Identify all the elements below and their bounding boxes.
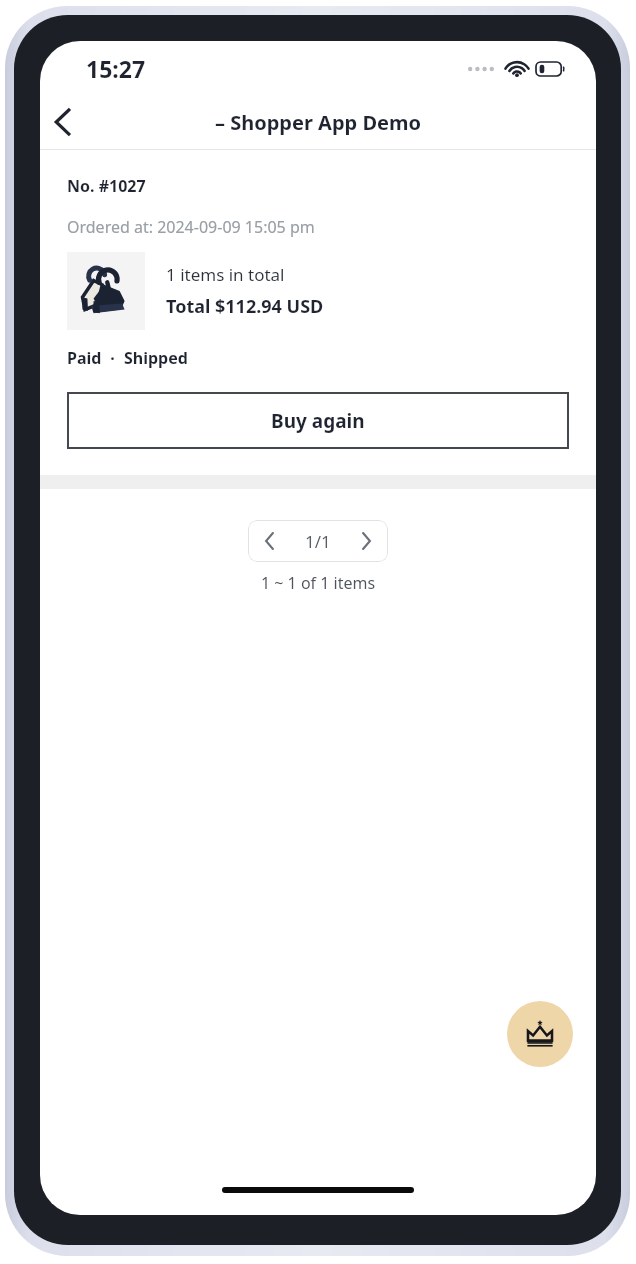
button[interactable]: Back: [40, 100, 84, 144]
staticText: 1/1: [305, 530, 331, 553]
staticText: 1 ~ 1 of 1 items: [261, 572, 376, 594]
staticText: 15:27: [86, 53, 146, 84]
staticText: ·: [102, 347, 124, 369]
staticText: Total $112.94 USD: [166, 294, 324, 319]
staticText: – Shopper App Demo: [215, 109, 421, 136]
staticText: Buy again: [271, 408, 365, 434]
staticText: No. #1027: [67, 175, 146, 197]
button[interactable]: Next page: [344, 520, 388, 562]
staticText: 1 items in total: [166, 263, 285, 286]
staticText: Paid: [67, 347, 102, 369]
button[interactable]: Previous page: [248, 520, 291, 562]
button[interactable]: Buy again: [67, 392, 569, 449]
button[interactable]: Loyalty rewards: [507, 1001, 573, 1067]
staticText: Ordered at: 2024-09-09 15:05 pm: [67, 216, 315, 238]
staticText: Shipped: [124, 347, 188, 369]
